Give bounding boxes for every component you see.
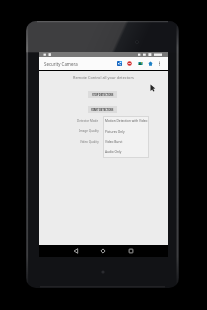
button[interactable]: Back (70, 245, 82, 257)
staticText: Motion Detection with Video (105, 119, 148, 123)
staticText: Remote Control all your detectors (73, 75, 134, 80)
staticText: START DETECTORS (91, 108, 114, 112)
button[interactable]: Pictures Only (103, 127, 149, 137)
button[interactable]: Video Burst (103, 137, 149, 147)
staticText: Video Quality (80, 140, 99, 144)
staticText: Audio Only (105, 150, 122, 154)
staticText: Image Quality (79, 129, 99, 133)
staticText: Video Burst (105, 140, 123, 144)
button[interactable]: Home (145, 57, 156, 70)
button[interactable]: Motion Detection with Video (103, 116, 149, 126)
button[interactable]: Stop recording (124, 57, 135, 70)
button[interactable]: Recent apps (125, 245, 137, 257)
staticText: Security Camera (44, 61, 78, 67)
button[interactable]: More options (155, 57, 164, 70)
button[interactable]: STOP DETECTORS (88, 91, 117, 98)
button[interactable]: Share (114, 57, 125, 70)
button[interactable]: Home (97, 245, 109, 257)
button[interactable]: START DETECTORS (88, 106, 117, 113)
staticText: Pictures Only (105, 130, 125, 134)
staticText: Detector Mode (77, 119, 99, 123)
button[interactable]: Audio Only (103, 147, 149, 157)
button[interactable]: Gallery (135, 57, 146, 70)
staticText: STOP DETECTORS (92, 93, 114, 97)
